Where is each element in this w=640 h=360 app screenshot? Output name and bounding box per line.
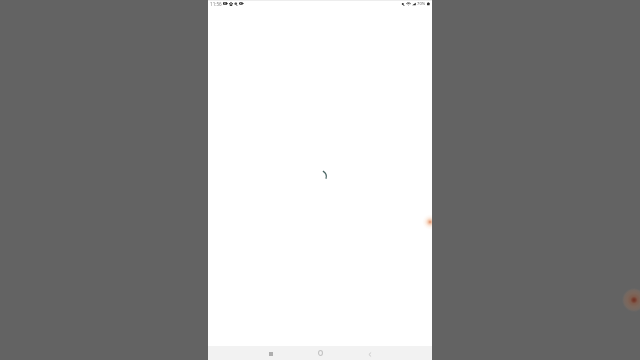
staticText: 70% bbox=[417, 1, 426, 7]
button[interactable]: Back bbox=[361, 346, 379, 360]
button[interactable]: Recent apps bbox=[262, 346, 280, 360]
staticText: 11:56 bbox=[210, 1, 222, 7]
button[interactable]: Home bbox=[311, 346, 329, 360]
